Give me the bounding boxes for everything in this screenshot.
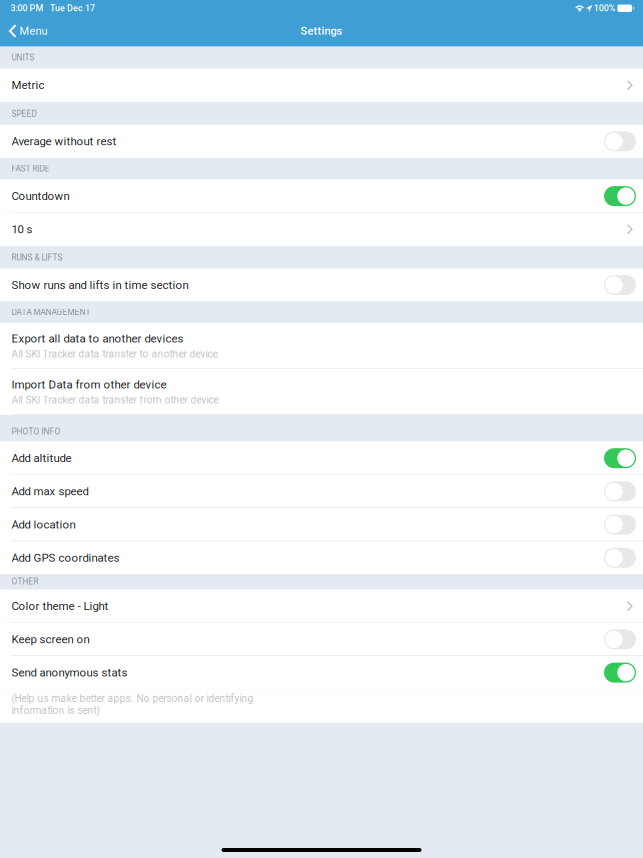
staticText: Settings bbox=[300, 24, 342, 37]
button[interactable]: Menu bbox=[0, 20, 56, 42]
button[interactable]: Export all data to another devices bbox=[0, 323, 643, 369]
staticText: Countdown bbox=[11, 189, 69, 203]
staticText: Add altitude bbox=[11, 451, 71, 465]
button[interactable]: Import Data from other device bbox=[0, 369, 643, 415]
staticText: OTHER bbox=[11, 577, 38, 587]
staticText: Metric bbox=[11, 78, 44, 92]
button[interactable]: Add GPS coordinates bbox=[0, 541, 643, 574]
staticText: 10 s bbox=[11, 223, 32, 236]
staticText: FAST RIDE bbox=[11, 164, 49, 173]
staticText: Tue Dec 17 bbox=[50, 3, 95, 13]
staticText: Color theme - Light bbox=[11, 599, 108, 613]
staticText: All SKI Tracker data transfer from other… bbox=[11, 394, 218, 406]
button[interactable]: Add altitude bbox=[0, 442, 643, 475]
staticText: All SKI Tracker data transfer to another… bbox=[11, 348, 217, 360]
staticText: 3:00 PM bbox=[10, 3, 43, 13]
button[interactable]: Countdown bbox=[0, 179, 643, 213]
staticText: (Help us make better apps. No personal o… bbox=[11, 693, 253, 716]
staticText: Average without rest bbox=[11, 135, 116, 148]
staticText: Menu bbox=[20, 24, 48, 37]
staticText: Send anonymous stats bbox=[11, 666, 127, 679]
staticText: Keep screen on bbox=[11, 633, 89, 646]
staticText: Add location bbox=[11, 518, 75, 531]
staticText: DATA MANAGEMENT bbox=[11, 307, 90, 317]
button[interactable]: Metric bbox=[0, 69, 643, 102]
button[interactable]: Add location bbox=[0, 508, 643, 541]
button[interactable]: Keep screen on bbox=[0, 623, 643, 656]
button[interactable]: Show runs and lifts in time section bbox=[0, 268, 643, 302]
staticText: UNITS bbox=[11, 53, 34, 63]
staticText: PHOTO INFO bbox=[11, 427, 60, 437]
button[interactable]: Add max speed bbox=[0, 475, 643, 508]
staticText: Export all data to another devices bbox=[11, 332, 183, 345]
staticText: Add max speed bbox=[11, 485, 88, 498]
staticText: Import Data from other device bbox=[11, 378, 166, 391]
staticText: SPEED bbox=[11, 109, 36, 119]
button[interactable]: 10 s bbox=[0, 213, 643, 246]
staticText: Show runs and lifts in time section bbox=[11, 278, 188, 292]
button[interactable]: Send anonymous stats bbox=[0, 656, 643, 689]
button[interactable]: Average without rest bbox=[0, 125, 643, 158]
button[interactable]: Color theme - Light bbox=[0, 590, 643, 623]
staticText: RUNS & LIFTS bbox=[11, 253, 62, 262]
staticText: Add GPS coordinates bbox=[11, 551, 119, 564]
staticText: 100% bbox=[594, 3, 616, 13]
